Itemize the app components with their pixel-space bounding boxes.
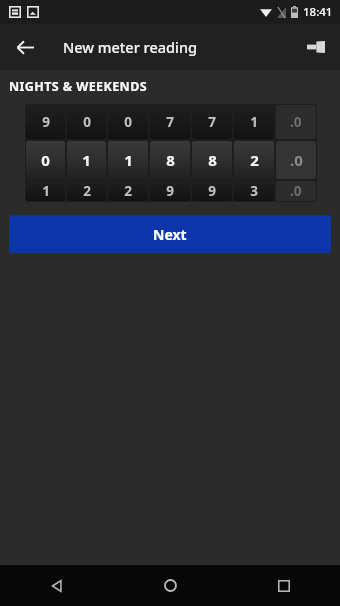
button[interactable]: 9 bbox=[192, 181, 232, 201]
staticText: New meter reading bbox=[63, 37, 198, 57]
staticText: 7 bbox=[208, 113, 216, 131]
staticText: 18:41 bbox=[303, 4, 333, 20]
button[interactable]: 7 bbox=[150, 105, 190, 139]
staticText: Next bbox=[153, 225, 187, 244]
button[interactable]: 3 bbox=[234, 181, 274, 201]
staticText: 2 bbox=[83, 182, 91, 200]
staticText: 8 bbox=[208, 150, 217, 170]
button[interactable]: 1 bbox=[108, 141, 148, 179]
button[interactable]: 8 bbox=[192, 141, 232, 179]
staticText: 1 bbox=[42, 182, 50, 200]
staticText: 2 bbox=[124, 182, 132, 200]
staticText: 1 bbox=[82, 150, 91, 170]
staticText: 3 bbox=[250, 182, 258, 200]
button[interactable]: 2 bbox=[234, 141, 274, 179]
staticText: 9 bbox=[166, 182, 174, 200]
staticText: 1 bbox=[124, 150, 133, 170]
button[interactable]: 7 bbox=[192, 105, 232, 139]
staticText: NIGHTS & WEEKENDS bbox=[9, 78, 148, 95]
staticText: 9 bbox=[42, 113, 50, 131]
button[interactable]: Back bbox=[0, 565, 114, 606]
staticText: 9 bbox=[208, 182, 216, 200]
button[interactable]: 1 bbox=[67, 141, 106, 179]
button[interactable]: Recents bbox=[227, 565, 340, 606]
staticText: 7 bbox=[166, 113, 174, 131]
button[interactable]: 2 bbox=[67, 181, 106, 201]
staticText: 8 bbox=[166, 150, 175, 170]
staticText: .0 bbox=[290, 150, 303, 170]
button[interactable]: 9 bbox=[25, 104, 317, 202]
staticText: 1 bbox=[250, 113, 258, 131]
button[interactable]: Back bbox=[6, 28, 44, 66]
staticText: 0 bbox=[41, 150, 50, 170]
button[interactable]: 8 bbox=[150, 141, 190, 179]
button[interactable]: 2 bbox=[108, 181, 148, 201]
button[interactable]: 1 bbox=[26, 181, 65, 201]
button[interactable]: 1 bbox=[234, 105, 274, 139]
button[interactable]: 0 bbox=[108, 105, 148, 139]
button[interactable]: 9 bbox=[150, 181, 190, 201]
staticText: 2 bbox=[250, 150, 259, 170]
button[interactable]: 9 bbox=[26, 105, 65, 139]
button[interactable]: 0 bbox=[67, 105, 106, 139]
button[interactable]: Next bbox=[9, 215, 331, 253]
button[interactable]: Home bbox=[114, 565, 227, 606]
staticText: .0 bbox=[290, 113, 302, 131]
button[interactable]: 0 bbox=[26, 141, 65, 179]
staticText: 0 bbox=[83, 113, 91, 131]
staticText: 0 bbox=[124, 113, 132, 131]
button[interactable]: Flashlight bbox=[297, 28, 335, 66]
staticText: .0 bbox=[290, 182, 302, 200]
